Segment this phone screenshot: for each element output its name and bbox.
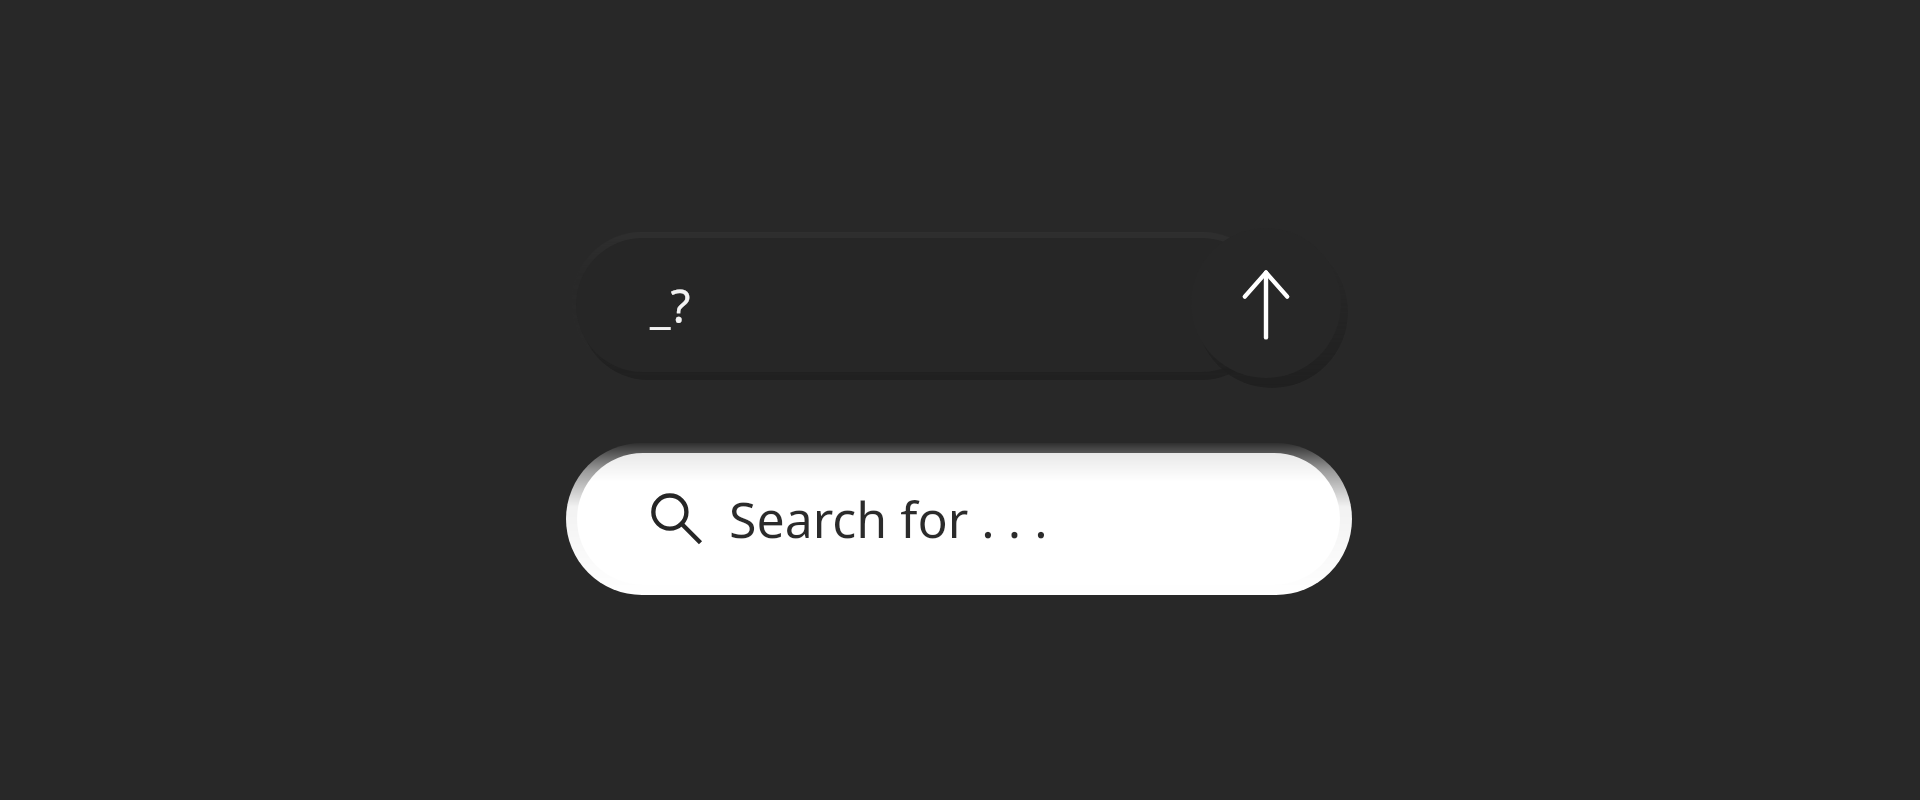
button[interactable]: Send <box>1191 228 1341 378</box>
staticText: _? <box>650 274 691 337</box>
button[interactable]: Search for . . . <box>577 453 1340 585</box>
button[interactable]: _? <box>576 238 1268 372</box>
staticText: Search for . . . <box>729 485 1048 553</box>
